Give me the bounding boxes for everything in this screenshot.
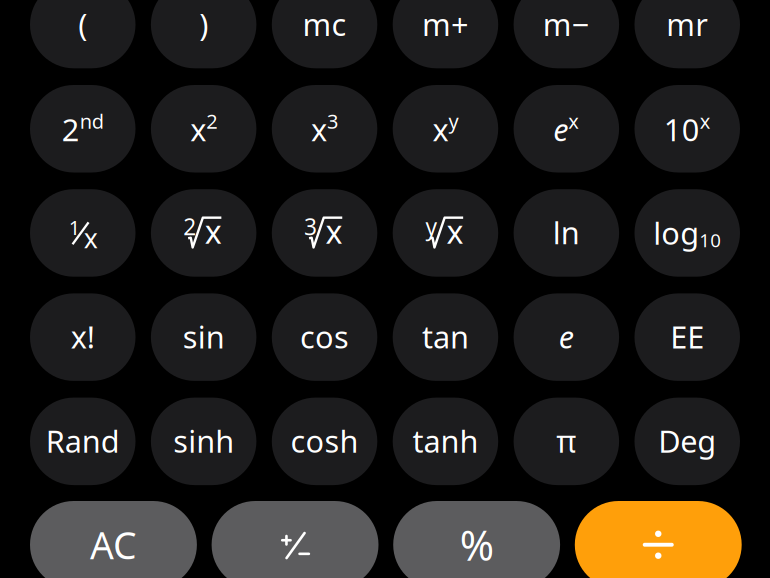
staticText: 2 bbox=[183, 211, 196, 241]
staticText: Deg bbox=[658, 420, 716, 461]
staticText: 1 bbox=[69, 214, 80, 241]
button[interactable]: Memory recall bbox=[634, 0, 740, 68]
button[interactable]: Degrees bbox=[634, 398, 740, 485]
button[interactable]: Hyperbolic tangent bbox=[393, 398, 498, 485]
button[interactable]: Pi bbox=[514, 398, 619, 485]
staticText: tan bbox=[422, 316, 469, 357]
staticText: y bbox=[425, 211, 437, 241]
staticText: sinh bbox=[173, 420, 234, 461]
button[interactable]: Random bbox=[30, 398, 135, 485]
staticText: mc bbox=[303, 4, 347, 44]
button[interactable]: Logarithm base ten bbox=[634, 189, 740, 277]
button[interactable]: Cosine bbox=[272, 293, 377, 381]
staticText: x bbox=[84, 220, 98, 256]
button[interactable]: Second function bbox=[30, 85, 135, 172]
staticText: x bbox=[446, 210, 463, 253]
staticText: ) bbox=[199, 4, 208, 44]
button[interactable]: Cube root bbox=[272, 189, 377, 277]
button[interactable]: Square root bbox=[151, 189, 256, 277]
staticText: cosh bbox=[291, 420, 359, 461]
staticText: % bbox=[460, 517, 494, 572]
staticText: m+ bbox=[422, 4, 469, 44]
staticText: 3 bbox=[304, 211, 317, 241]
staticText: m− bbox=[543, 4, 590, 44]
staticText: tanh bbox=[412, 420, 478, 461]
staticText: mr bbox=[666, 4, 708, 44]
staticText: 2nd bbox=[62, 108, 104, 150]
button[interactable]: Divide bbox=[575, 501, 742, 578]
staticText: ln bbox=[553, 212, 580, 253]
button[interactable]: y-th root bbox=[393, 189, 498, 277]
button[interactable]: All clear bbox=[30, 501, 197, 578]
button[interactable]: Exponent bbox=[634, 293, 740, 381]
button[interactable]: e to the power of x bbox=[514, 85, 619, 172]
button[interactable]: Tangent bbox=[393, 293, 498, 381]
staticText: x2 bbox=[190, 108, 217, 150]
button[interactable]: x to the power of y bbox=[393, 85, 498, 172]
button[interactable]: Percent bbox=[393, 501, 560, 578]
staticText: 10x bbox=[664, 108, 711, 150]
button[interactable]: x squared bbox=[151, 85, 256, 172]
button[interactable]: Sine bbox=[151, 293, 256, 381]
button[interactable]: x cubed bbox=[272, 85, 377, 172]
staticText: EE bbox=[670, 316, 704, 357]
staticText: AC bbox=[90, 520, 137, 570]
button[interactable]: Hyperbolic sine bbox=[151, 398, 256, 485]
staticText: ex bbox=[553, 108, 579, 150]
staticText: log10 bbox=[653, 213, 721, 253]
button[interactable]: Open parenthesis bbox=[30, 0, 135, 68]
button[interactable]: Ten to the power of x bbox=[634, 85, 740, 172]
button[interactable]: Factorial bbox=[30, 293, 135, 381]
staticText: sin bbox=[183, 316, 225, 357]
staticText: x bbox=[326, 210, 343, 253]
button[interactable]: Memory add bbox=[393, 0, 498, 68]
button[interactable]: One divided by x bbox=[30, 189, 135, 277]
staticText: π bbox=[556, 420, 576, 461]
staticText: xy bbox=[432, 108, 458, 150]
staticText: x! bbox=[71, 316, 95, 357]
staticText: ( bbox=[78, 4, 87, 44]
button[interactable]: Memory clear bbox=[272, 0, 377, 68]
button[interactable]: Natural logarithm bbox=[514, 189, 619, 277]
button[interactable]: Plus Minus bbox=[212, 501, 378, 578]
staticText: e bbox=[559, 316, 574, 357]
staticText: cos bbox=[300, 316, 349, 357]
button[interactable]: Euler's number bbox=[514, 293, 619, 381]
staticText: Rand bbox=[46, 420, 120, 461]
button[interactable]: Close parenthesis bbox=[151, 0, 256, 68]
staticText: x3 bbox=[311, 108, 338, 150]
button[interactable]: Memory subtract bbox=[514, 0, 619, 68]
button[interactable]: Hyperbolic cosine bbox=[272, 398, 377, 485]
staticText: x bbox=[205, 210, 222, 253]
